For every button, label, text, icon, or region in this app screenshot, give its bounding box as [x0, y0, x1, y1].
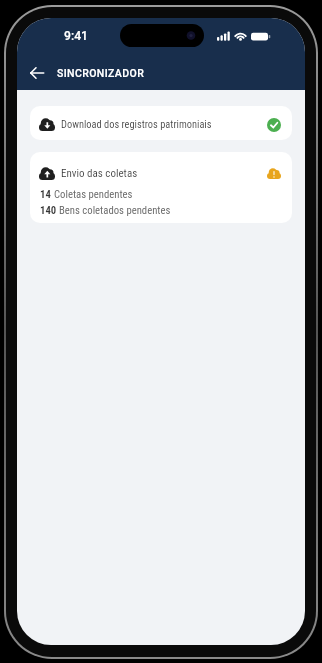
staticText: SINCRONIZADOR — [57, 67, 145, 79]
button[interactable]: Download dos registros patrimoniais — [30, 106, 292, 140]
staticText: 9:41 — [64, 29, 89, 43]
button[interactable]: Envio das coletas — [30, 152, 292, 223]
staticText: Download dos registros patrimoniais — [61, 118, 212, 130]
staticText: Envio das coletas — [61, 167, 138, 180]
staticText: Bens coletados pendentes — [59, 204, 171, 217]
staticText: Coletas pendentes — [54, 188, 133, 201]
staticText: 14 — [40, 188, 54, 201]
button[interactable] — [23, 59, 51, 86]
staticText: 140 — [40, 204, 59, 217]
